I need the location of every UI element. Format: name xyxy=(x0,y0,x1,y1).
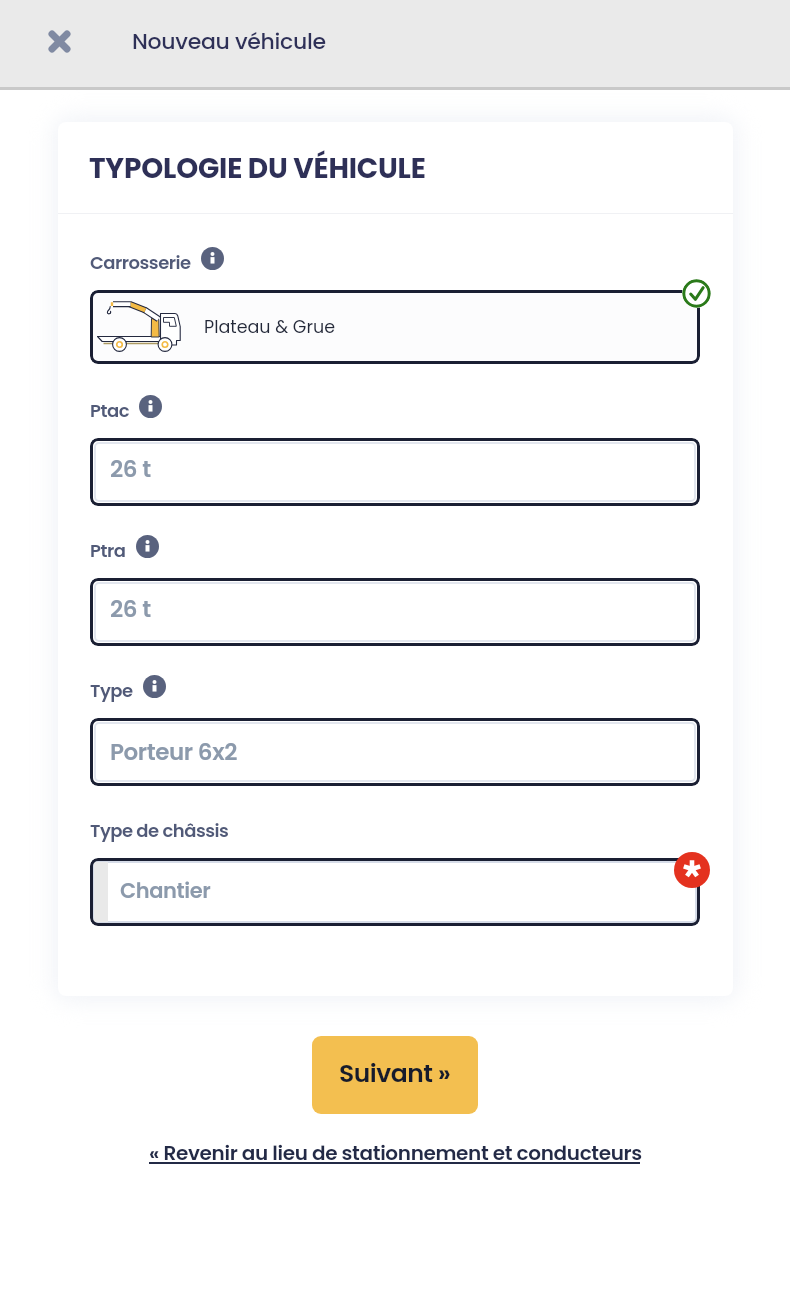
staticText: Porteur 6x2 xyxy=(110,736,237,768)
button[interactable]: Fermer xyxy=(38,20,80,62)
staticText: Nouveau véhicule xyxy=(132,26,326,57)
staticText: Ptra xyxy=(90,538,126,563)
staticText: Suivant » xyxy=(339,1056,451,1091)
staticText: Type xyxy=(90,678,133,703)
staticText: Ptac xyxy=(90,398,129,423)
staticText: Type de châssis xyxy=(90,818,229,843)
staticText: TYPOLOGIE DU VÉHICULE xyxy=(89,149,426,188)
button[interactable]: Information xyxy=(143,675,166,698)
button[interactable]: Information xyxy=(136,535,159,558)
staticText: Plateau & Grue xyxy=(204,315,335,340)
button[interactable]: « Revenir au lieu de stationnement et co… xyxy=(149,1139,642,1167)
staticText: Chantier xyxy=(120,876,211,905)
button[interactable]: Suivant » xyxy=(312,1036,478,1114)
button[interactable]: Information xyxy=(139,395,162,418)
other: Champ obligatoire xyxy=(674,852,710,888)
button[interactable]: 26 t xyxy=(90,578,700,646)
staticText: 26 t xyxy=(110,453,151,485)
button[interactable]: Chantier xyxy=(90,858,700,926)
staticText: « Revenir au lieu de stationnement et co… xyxy=(149,1139,642,1167)
button[interactable]: 26 t xyxy=(90,438,700,506)
button[interactable]: Plateau & Grue xyxy=(90,290,700,364)
staticText: Carrosserie xyxy=(90,250,191,275)
button[interactable]: Porteur 6x2 xyxy=(90,718,700,786)
staticText: 26 t xyxy=(110,593,151,625)
button[interactable]: Information xyxy=(201,247,224,270)
